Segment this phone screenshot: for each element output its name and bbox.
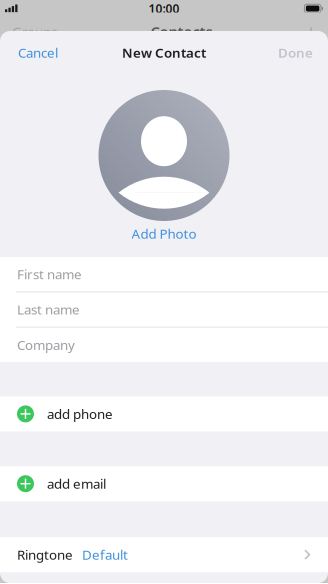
- staticText: Contacts: [150, 22, 212, 41]
- staticText: add phone: [47, 405, 113, 423]
- button[interactable]: Ringtone: [0, 537, 328, 572]
- staticText: Ringtone: [17, 546, 73, 563]
- staticText: Default: [82, 546, 128, 563]
- button[interactable]: add phone: [0, 396, 328, 431]
- staticText: Add Photo: [131, 225, 196, 242]
- button[interactable]: Done: [278, 44, 313, 61]
- button[interactable]: Cancel: [18, 44, 58, 61]
- button[interactable]: add email: [0, 466, 328, 501]
- staticText: 10:00: [148, 0, 179, 16]
- staticText: Company: [17, 336, 75, 354]
- button[interactable]: Add Photo: [0, 221, 328, 246]
- staticText: Last name: [17, 301, 80, 318]
- staticText: Cancel: [18, 44, 58, 61]
- staticText: First name: [17, 265, 82, 283]
- staticText: Groups: [12, 23, 57, 40]
- staticText: +: [306, 20, 316, 43]
- staticText: Done: [278, 44, 313, 61]
- staticText: New Contact: [122, 44, 206, 61]
- staticText: add email: [47, 475, 106, 492]
